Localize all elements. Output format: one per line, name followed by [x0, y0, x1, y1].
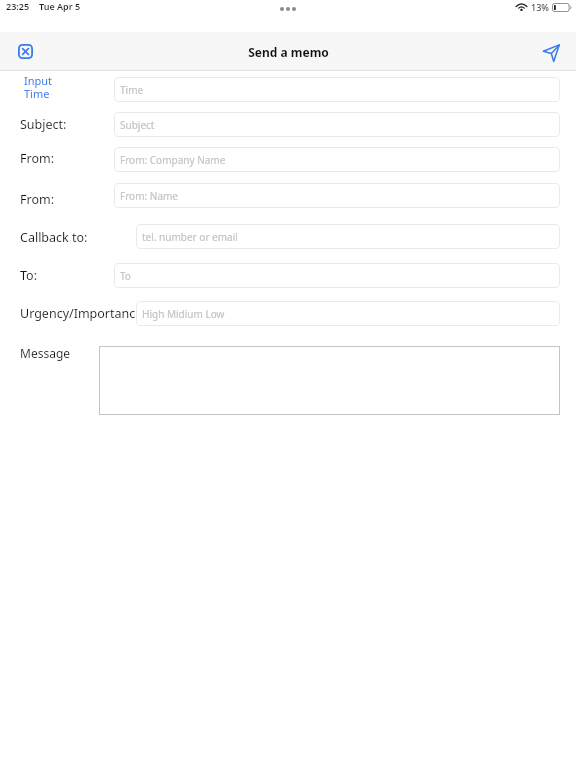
button[interactable]: Send: [536, 38, 566, 68]
button[interactable]: Time: [114, 77, 560, 102]
staticText: Send a memo: [248, 44, 329, 60]
staticText: Subject:: [20, 116, 67, 133]
staticText: From:: [20, 191, 55, 208]
staticText: Urgency/Importance: [20, 305, 143, 322]
staticText: High Midium Low: [142, 307, 225, 321]
button[interactable]: From: Company Name: [114, 147, 560, 172]
staticText: To:: [20, 267, 37, 284]
staticText: To: [120, 269, 131, 283]
staticText: 23:25: [6, 0, 30, 12]
staticText: Subject: [120, 118, 155, 132]
button[interactable]: From: Name: [114, 183, 560, 208]
button[interactable]: Close: [10, 36, 40, 66]
staticText: tel. number or email: [142, 230, 238, 244]
button[interactable]: High Midium Low: [136, 301, 560, 326]
staticText: Message: [20, 345, 71, 361]
button[interactable]: tel. number or email: [136, 224, 560, 249]
button[interactable]: [99, 346, 560, 415]
button[interactable]: Input Time: [24, 73, 53, 102]
staticText: Tue Apr 5: [39, 0, 81, 12]
button[interactable]: Subject: [114, 112, 560, 137]
button[interactable]: To: [114, 263, 560, 288]
staticText: From: Name: [120, 189, 178, 203]
staticText: From: Company Name: [120, 153, 226, 167]
staticText: 13%: [531, 1, 549, 13]
staticText: From:: [20, 150, 55, 167]
staticText: Callback to:: [20, 229, 88, 246]
staticText: Time: [120, 83, 144, 97]
